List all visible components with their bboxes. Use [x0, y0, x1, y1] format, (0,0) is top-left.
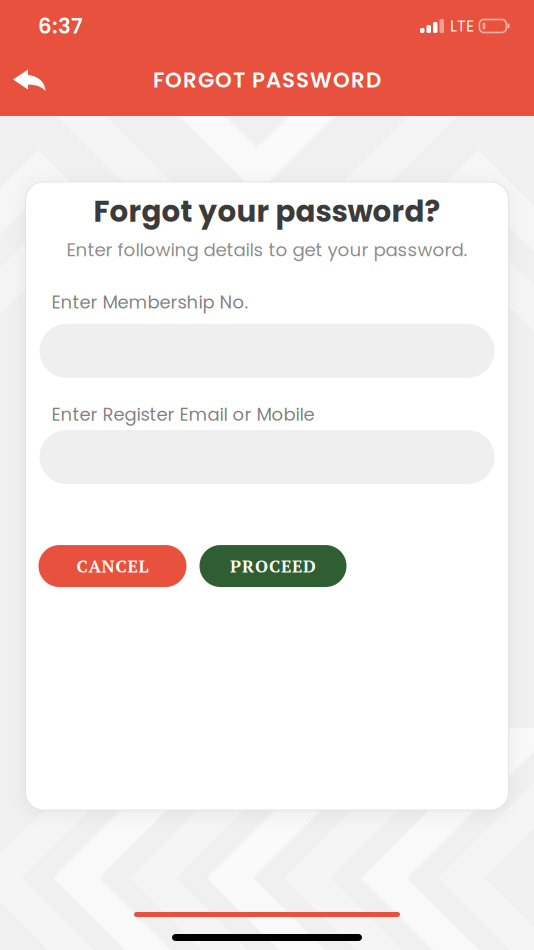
button[interactable]: C A N C E L [38, 545, 186, 587]
button[interactable]: P R O C E E D [199, 545, 346, 587]
staticText: Forgot your password? [93, 191, 440, 232]
staticText: Enter Register Email or Mobile [51, 402, 314, 427]
staticText: C A N C E L [76, 555, 148, 578]
staticText: LTE [450, 15, 474, 37]
staticText: Enter Membership No. [51, 290, 248, 315]
button[interactable]: Back [0, 58, 47, 102]
staticText: F O R G O T P A S S W O R D [153, 65, 381, 95]
staticText: P R O C E E D [230, 555, 316, 578]
staticText: 6:37 [38, 11, 83, 41]
staticText: Enter following details to get your pass… [66, 237, 467, 263]
